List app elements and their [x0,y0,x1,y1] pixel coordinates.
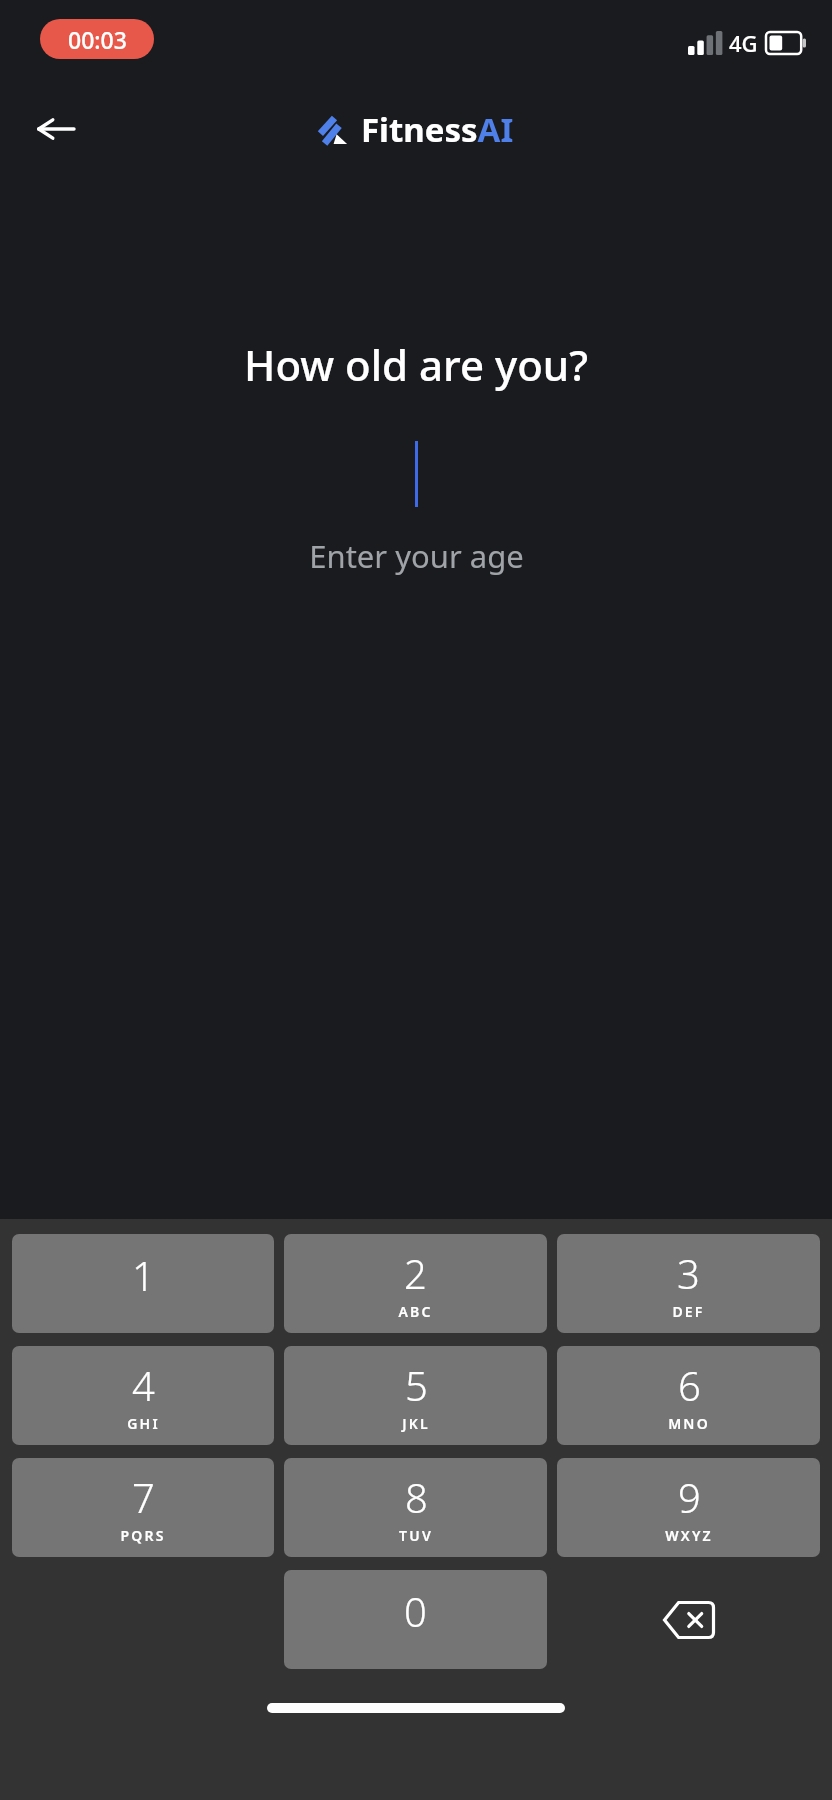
button[interactable]: Backspace [557,1570,820,1669]
staticText: 0 [404,1584,427,1638]
staticText: 4 [132,1358,155,1412]
staticText: How old are you? [244,336,588,393]
staticText: 9 [678,1470,701,1524]
button[interactable]: 3 [557,1234,820,1333]
staticText: Enter your age [309,535,524,577]
staticText: GHI [127,1414,160,1433]
staticText: 4G [729,28,758,58]
staticText: 8 [405,1470,428,1524]
button[interactable]: Back [24,97,88,161]
staticText: 2 [404,1246,427,1300]
staticText: ABC [398,1302,433,1321]
button[interactable]: 1 [12,1234,274,1333]
staticText: 1 [132,1248,155,1302]
button[interactable]: 2 [284,1234,547,1333]
staticText: TUV [399,1526,433,1545]
button[interactable]: 4 [12,1346,274,1445]
staticText: 7 [132,1470,155,1524]
button[interactable]: 0 [284,1570,547,1669]
staticText: FitnessAI [361,107,514,152]
staticText: MNO [668,1414,710,1433]
staticText: JKL [402,1414,430,1433]
staticText: PQRS [120,1526,166,1545]
staticText: 5 [405,1358,428,1412]
staticText: DEF [672,1302,705,1321]
button[interactable]: 5 [284,1346,547,1445]
button[interactable]: 9 [557,1458,820,1557]
staticText: 3 [677,1246,700,1300]
staticText: WXYZ [665,1526,713,1545]
button[interactable]: 6 [557,1346,820,1445]
staticText: 6 [678,1358,701,1412]
staticText: 00:03 [68,24,127,55]
button[interactable]: 7 [12,1458,274,1557]
button[interactable]: 8 [284,1458,547,1557]
button[interactable] [0,440,832,508]
